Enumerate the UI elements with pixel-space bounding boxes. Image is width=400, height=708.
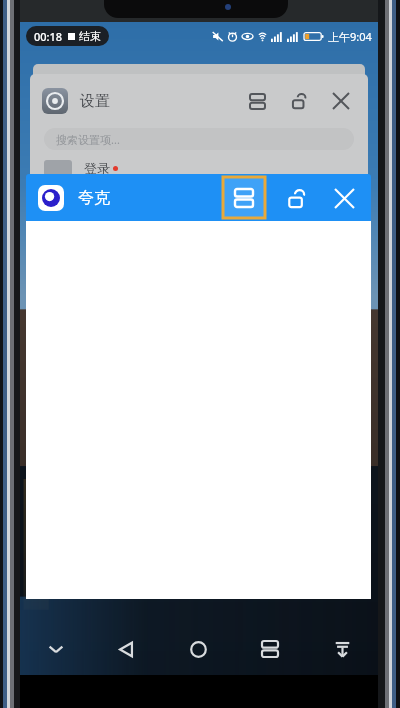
button[interactable]: Lock <box>279 181 313 215</box>
button[interactable]: 00:18 <box>26 26 109 46</box>
button[interactable]: Lock <box>284 86 314 116</box>
button[interactable]: Back <box>91 623 162 675</box>
button[interactable]: 搜索设置项... <box>44 128 354 150</box>
staticText: 设置 <box>80 92 110 111</box>
button[interactable]: Split screen <box>223 177 265 218</box>
button[interactable]: Home <box>162 623 234 675</box>
button[interactable]: Split screen <box>242 86 272 116</box>
button[interactable]: Hide keyboard <box>20 623 91 675</box>
staticText: 夸克 <box>78 188 110 208</box>
button[interactable]: Close <box>326 86 356 116</box>
staticText: 登录 <box>84 160 110 176</box>
staticText: 00:18 <box>34 29 63 44</box>
button[interactable]: Recents <box>234 623 306 675</box>
staticText: 搜索设置项... <box>56 132 120 147</box>
staticText: 上午9:04 <box>328 29 372 44</box>
staticText: 结束 <box>79 29 101 43</box>
button[interactable]: Collapse <box>306 623 378 675</box>
button[interactable]: Close <box>327 181 361 215</box>
